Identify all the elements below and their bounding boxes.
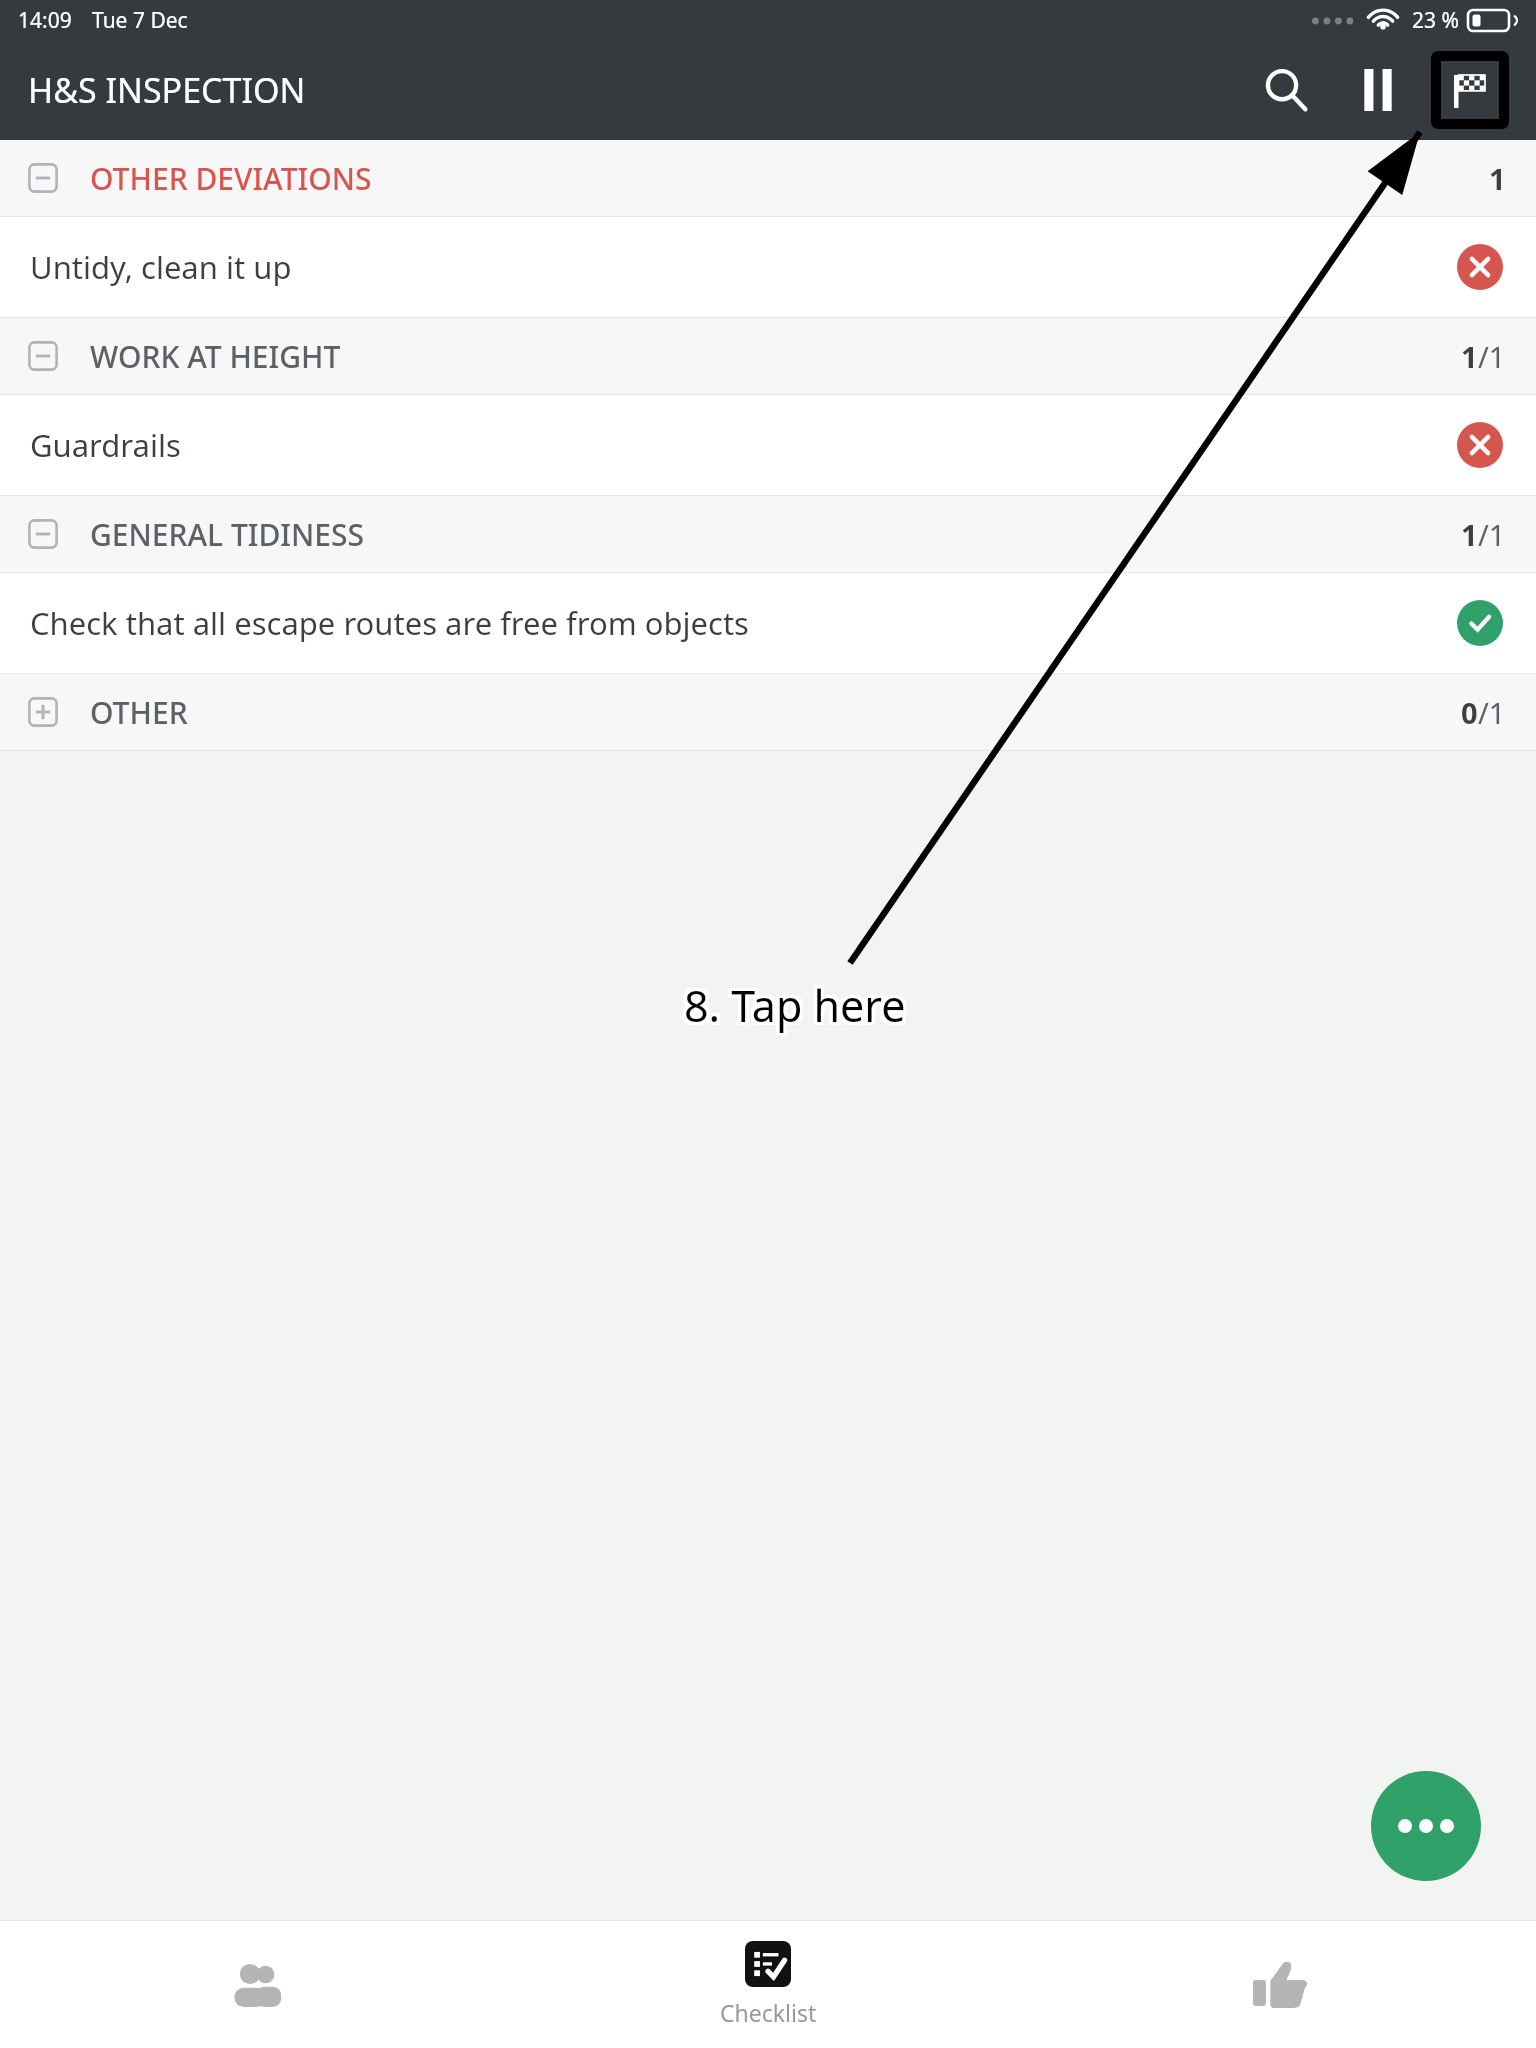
staticText: Checklist [720,1997,817,2028]
staticText: /1 [1478,693,1506,732]
button[interactable]: Finish inspection [1424,44,1516,136]
staticText: WORK AT HEIGHT [90,336,341,377]
button[interactable]: OTHER DEVIATIONS [0,140,1536,216]
button[interactable]: More actions [1371,1771,1481,1881]
staticText: 8. Tap here [687,976,909,1035]
button[interactable]: Untidy, clean it up [0,217,1536,317]
button[interactable]: Check that all escape routes are free fr… [0,573,1536,673]
button[interactable]: Guardrails [0,395,1536,495]
staticText: OTHER DEVIATIONS [90,158,372,199]
staticText: H&S INSPECTION [28,67,306,113]
staticText: 1 [1461,515,1478,554]
staticText: /1 [1478,337,1506,376]
staticText: 8. Tap here [681,979,903,1038]
staticText: 0 [1461,693,1478,732]
staticText: Tue 7 Dec [92,6,188,35]
staticText: GENERAL TIDINESS [90,514,364,555]
staticText: 8. Tap here [684,973,906,1032]
button[interactable]: Approve [1024,1921,1536,2048]
staticText: Check that all escape routes are free fr… [30,602,1439,644]
button[interactable]: Pause [1332,44,1424,136]
button[interactable]: Search [1240,44,1332,136]
staticText: 8. Tap here [681,973,903,1032]
button[interactable]: People [0,1921,512,2048]
staticText: Guardrails [30,424,1439,466]
button[interactable]: GENERAL TIDINESS [0,496,1536,572]
staticText: 1 [1489,159,1506,198]
staticText: OTHER [90,692,188,733]
staticText: Untidy, clean it up [30,246,1439,288]
staticText: /1 [1478,515,1506,554]
staticText: 8. Tap here [684,976,906,1035]
staticText: 1 [1461,337,1478,376]
staticText: 8. Tap here [687,979,909,1038]
staticText: 14:09 [18,6,72,35]
button[interactable]: OTHER [0,674,1536,750]
button[interactable]: WORK AT HEIGHT [0,318,1536,394]
staticText: 8. Tap here [687,973,909,1032]
staticText: 8. Tap here [684,979,906,1038]
button[interactable]: Checklist [512,1921,1024,2048]
staticText: 8. Tap here [681,976,903,1035]
staticText: 23 % [1412,6,1459,35]
